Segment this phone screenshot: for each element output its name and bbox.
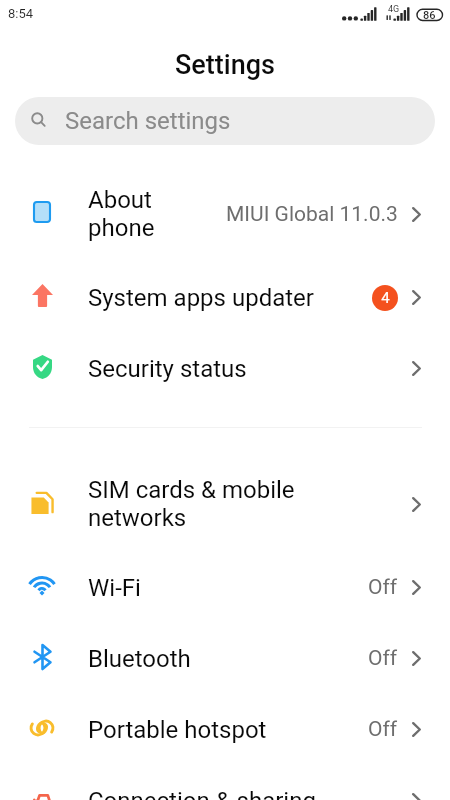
staticText: 4G bbox=[388, 4, 400, 15]
other: Connection and sharing bbox=[30, 788, 54, 800]
button[interactable]: Connection and sharing bbox=[0, 765, 450, 800]
button[interactable]: Bluetooth bbox=[0, 623, 450, 694]
staticText: Off bbox=[368, 646, 398, 671]
staticText: About phone bbox=[88, 186, 226, 242]
button[interactable]: About phone bbox=[0, 166, 450, 262]
staticText: Search settings bbox=[65, 107, 231, 135]
staticText: SIM cards & mobile networks bbox=[88, 476, 412, 532]
staticText: System apps updater bbox=[88, 284, 372, 312]
staticText: Off bbox=[368, 575, 398, 600]
staticText: Connection & sharing bbox=[88, 787, 412, 800]
staticText: Bluetooth bbox=[88, 645, 368, 673]
staticText: Security status bbox=[88, 355, 412, 383]
staticText: 4 bbox=[381, 289, 390, 307]
staticText: 86 bbox=[423, 9, 436, 22]
staticText: MIUI Global 11.0.3 bbox=[226, 202, 398, 227]
staticText: Off bbox=[368, 717, 398, 742]
button[interactable]: Search settings bbox=[15, 97, 435, 145]
button[interactable]: System apps updater bbox=[0, 262, 450, 333]
staticText: Portable hotspot bbox=[88, 716, 368, 744]
button[interactable]: Wi-Fi bbox=[0, 552, 450, 623]
button[interactable]: SIM cards & mobile networks bbox=[0, 456, 450, 552]
button[interactable]: Security status bbox=[0, 333, 450, 404]
staticText: 8:54 bbox=[8, 6, 34, 21]
button[interactable]: Portable hotspot bbox=[0, 694, 450, 765]
staticText: Settings bbox=[175, 49, 275, 81]
staticText: Wi-Fi bbox=[88, 574, 368, 602]
